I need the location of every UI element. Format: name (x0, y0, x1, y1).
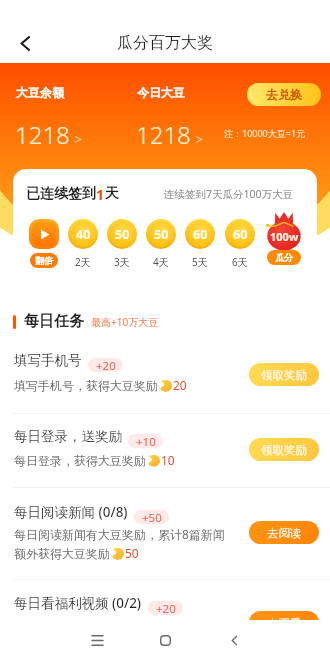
staticText: +20 (96, 358, 116, 372)
staticText: 60 (193, 226, 208, 243)
staticText: 3天 (114, 255, 130, 269)
staticText: 1218 (15, 118, 70, 151)
button[interactable]: Double reward (28, 219, 60, 268)
staticText: 60 (233, 226, 248, 243)
staticText: 翻倍 (35, 255, 53, 266)
staticText: 领取奖励 (261, 368, 307, 382)
staticText: 今日大豆 (137, 85, 185, 100)
staticText: 最高+10万大豆 (91, 315, 159, 329)
staticText: 每日任务 (24, 312, 84, 331)
staticText: 天 (105, 185, 119, 203)
staticText: 6天 (232, 255, 248, 269)
button[interactable]: Home (145, 620, 185, 660)
staticText: 去阅读 (267, 526, 302, 540)
button[interactable]: 50 (107, 219, 137, 269)
staticText: 100w (270, 229, 299, 244)
staticText: 每日阅读新闻 (0/8) (14, 503, 128, 521)
staticText: 额外获得大豆奖励 (14, 546, 110, 561)
staticText: 每日登录，送奖励 (14, 428, 122, 445)
staticText: +20 (156, 601, 176, 615)
staticText: 4天 (153, 255, 169, 269)
staticText: > (75, 131, 82, 147)
staticText: 1 (96, 185, 105, 204)
staticText: 每日登录，获得大豆奖励 (14, 453, 146, 468)
staticText: 连续签到7天瓜分100万大豆 (164, 187, 294, 201)
staticText: 50 (154, 226, 169, 243)
staticText: 领取奖励 (261, 443, 307, 457)
staticText: 填写手机号，获得大豆奖励 (14, 378, 158, 393)
button[interactable]: 去阅读 (249, 521, 319, 544)
button[interactable]: 40 (68, 219, 98, 269)
staticText: +50 (142, 510, 162, 524)
staticText: 10 (161, 452, 175, 468)
staticText: 注：10000大豆=1元 (224, 127, 306, 139)
staticText: 每日阅读新闻有大豆奖励，累计8篇新闻 (14, 526, 225, 542)
staticText: 瓜分百万大奖 (117, 33, 213, 53)
button[interactable]: Back (214, 620, 254, 660)
staticText: 40 (76, 226, 91, 243)
button[interactable]: 50 (146, 219, 176, 269)
button[interactable]: 去兑换 (247, 83, 321, 106)
button[interactable]: 去观看 (249, 611, 319, 634)
staticText: 每日看福利视频 (0/2) (14, 594, 142, 612)
staticText: > (196, 131, 203, 147)
button[interactable]: 领取奖励 (249, 363, 319, 386)
button[interactable]: Back (10, 28, 40, 58)
staticText: +10 (136, 434, 156, 448)
button[interactable]: 60 (225, 219, 255, 269)
staticText: 50 (125, 545, 139, 561)
staticText: 已连续签到 (26, 185, 96, 203)
staticText: 2天 (75, 255, 91, 269)
staticText: 1218 (136, 118, 191, 151)
button[interactable]: 100w (264, 212, 304, 267)
staticText: 去观看 (267, 616, 302, 630)
staticText: 5天 (192, 255, 208, 269)
staticText: 瓜分 (275, 252, 293, 263)
button[interactable]: 60 (185, 219, 215, 269)
staticText: 大豆余额 (16, 85, 64, 100)
staticText: 填写手机号 (14, 352, 82, 369)
staticText: 20 (173, 377, 187, 393)
button[interactable]: 领取奖励 (249, 438, 319, 461)
button[interactable]: Recent apps (77, 620, 117, 660)
staticText: 50 (115, 226, 130, 243)
staticText: 去兑换 (266, 87, 302, 102)
